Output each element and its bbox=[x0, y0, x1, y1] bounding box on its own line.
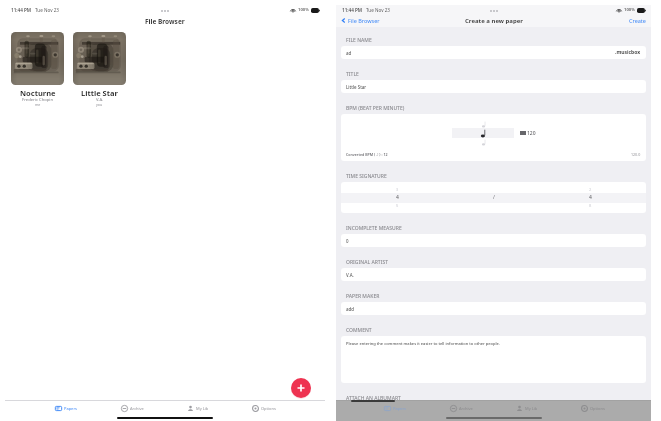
staticText: Options bbox=[261, 406, 276, 411]
staticText: Little Star bbox=[81, 88, 118, 98]
staticText: you bbox=[96, 102, 103, 107]
staticText: / bbox=[493, 194, 495, 201]
staticText: 8 bbox=[589, 203, 592, 208]
staticText: 100% bbox=[298, 7, 309, 13]
staticText: 0 bbox=[346, 238, 349, 244]
staticText: Archive bbox=[459, 406, 473, 411]
button[interactable]: Nocturne bbox=[11, 32, 64, 109]
button[interactable]: Options bbox=[560, 405, 626, 412]
staticText: TIME SIGNATURE bbox=[346, 173, 387, 180]
button[interactable]: Papers bbox=[362, 405, 428, 412]
button[interactable]: File Browser bbox=[340, 17, 380, 24]
staticText: 4 bbox=[396, 194, 399, 201]
staticText: Little Star bbox=[346, 84, 367, 90]
staticText: Create a new paper bbox=[465, 17, 523, 25]
staticText: ATTACH AN ALBUMART bbox=[346, 395, 401, 402]
staticText: V.A. bbox=[96, 97, 104, 103]
staticText: 120 bbox=[527, 130, 536, 137]
staticText: COMMENT bbox=[346, 327, 372, 334]
button[interactable]: Create bbox=[629, 17, 646, 24]
staticText: INCOMPLETE MEASURE bbox=[346, 225, 402, 232]
staticText: 11:44 PM bbox=[342, 7, 363, 13]
staticText: File Browser bbox=[348, 17, 380, 24]
staticText: TITLE bbox=[346, 71, 359, 78]
staticText: add bbox=[346, 306, 354, 312]
staticText: Options bbox=[590, 406, 605, 411]
staticText: Converted BPM ( ♪ ) : 12 bbox=[346, 152, 388, 157]
staticText: ad bbox=[346, 50, 352, 56]
button[interactable]: Little Star bbox=[341, 80, 646, 93]
staticText: Archive bbox=[130, 406, 144, 411]
staticText: 4 bbox=[589, 194, 592, 201]
staticText: 100% bbox=[624, 7, 635, 13]
staticText: PAPER MAKER bbox=[346, 293, 380, 300]
staticText: Tue Nov 23 bbox=[366, 7, 390, 13]
button[interactable]: ad bbox=[341, 46, 646, 59]
staticText: My Lib bbox=[196, 406, 209, 411]
staticText: 5 bbox=[396, 203, 399, 208]
staticText: Please entering the comment makes it eas… bbox=[346, 341, 500, 346]
staticText: Frederic Chopin bbox=[22, 97, 54, 103]
staticText: BPM (BEAT PER MINUTE) bbox=[346, 105, 405, 112]
button[interactable]: My Lib bbox=[165, 405, 231, 412]
button[interactable]: add bbox=[341, 302, 646, 315]
staticText: me bbox=[35, 102, 41, 107]
staticText: File Browser bbox=[145, 17, 185, 26]
staticText: ORIGINAL ARTIST bbox=[346, 259, 388, 266]
button[interactable]: Archive bbox=[428, 405, 494, 412]
staticText: Papers bbox=[393, 406, 406, 411]
staticText: Papers bbox=[64, 406, 77, 411]
button[interactable]: Archive bbox=[99, 405, 165, 412]
button[interactable]: Options bbox=[231, 405, 297, 412]
staticText: V.A. bbox=[346, 272, 354, 278]
staticText: .musicbox bbox=[615, 49, 641, 56]
staticText: Nocturne bbox=[20, 88, 56, 98]
button[interactable]: Little Star bbox=[73, 32, 126, 109]
staticText: My Lib bbox=[525, 406, 538, 411]
button[interactable]: My Lib bbox=[494, 405, 560, 412]
staticText: 11:44 PM bbox=[11, 7, 32, 13]
button[interactable]: V.A. bbox=[341, 268, 646, 281]
button[interactable]: Create new paper bbox=[291, 378, 311, 398]
button[interactable]: Papers bbox=[33, 405, 99, 412]
button[interactable]: 0 bbox=[341, 234, 646, 247]
staticText: 120.0 bbox=[631, 152, 641, 157]
staticText: 2 bbox=[589, 187, 592, 192]
staticText: 3 bbox=[396, 187, 399, 192]
staticText: FILE NAME bbox=[346, 37, 372, 44]
staticText: Tue Nov 23 bbox=[35, 7, 59, 13]
